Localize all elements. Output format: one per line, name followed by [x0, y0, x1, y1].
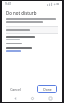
- button[interactable]: Recent apps: [45, 95, 55, 102]
- button[interactable]: [6, 43, 58, 44]
- button[interactable]: [6, 27, 58, 33]
- button[interactable]: Cancel: [7, 85, 24, 94]
- staticText: Do not disturb: [6, 10, 37, 16]
- button[interactable]: Back: [10, 95, 20, 102]
- button[interactable]: Home: [27, 95, 37, 102]
- button[interactable]: Done: [37, 85, 57, 93]
- staticText: Cancel: [10, 87, 21, 92]
- staticText: 9:41: [5, 2, 12, 6]
- button[interactable]: [6, 50, 21, 52]
- staticText: Done: [43, 87, 52, 92]
- button[interactable]: [6, 36, 58, 40]
